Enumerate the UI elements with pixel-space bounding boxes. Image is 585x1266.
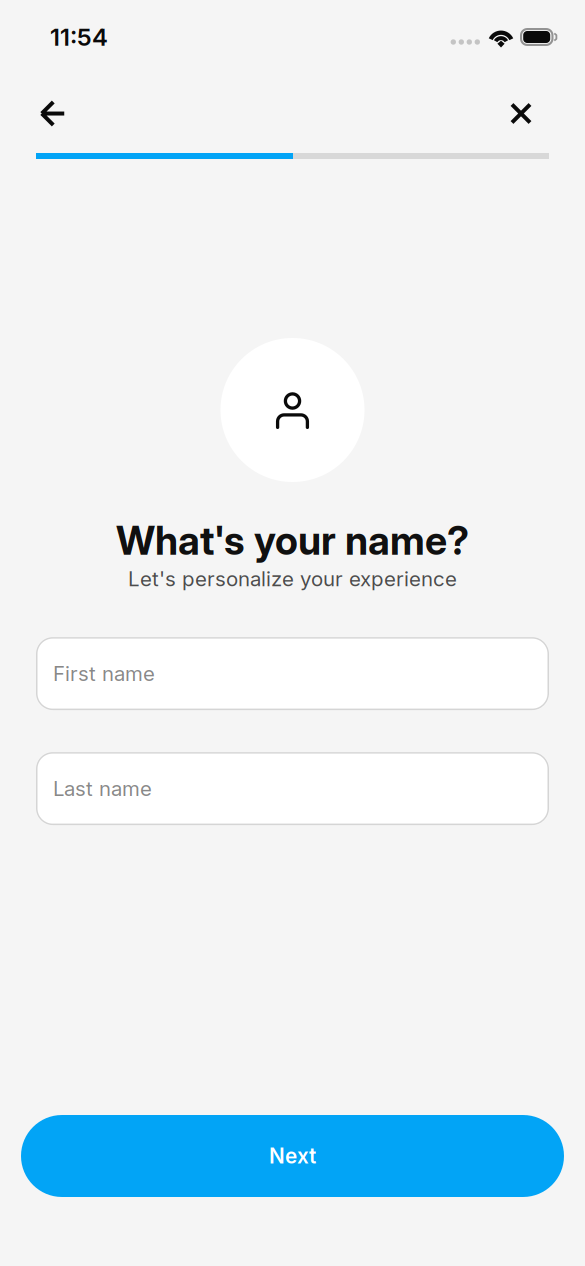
button[interactable]: Back <box>25 85 81 141</box>
staticText: 11:54 <box>50 22 108 51</box>
button[interactable]: Close <box>493 85 549 141</box>
button[interactable]: Last name <box>36 752 549 825</box>
staticText: What's your name? <box>116 517 469 564</box>
staticText: Last name <box>53 776 152 801</box>
staticText: First name <box>53 661 155 686</box>
button[interactable]: First name <box>36 637 549 710</box>
button[interactable]: Next <box>21 1115 564 1197</box>
staticText: Let's personalize your experience <box>128 566 457 591</box>
staticText: Next <box>269 1143 316 1169</box>
